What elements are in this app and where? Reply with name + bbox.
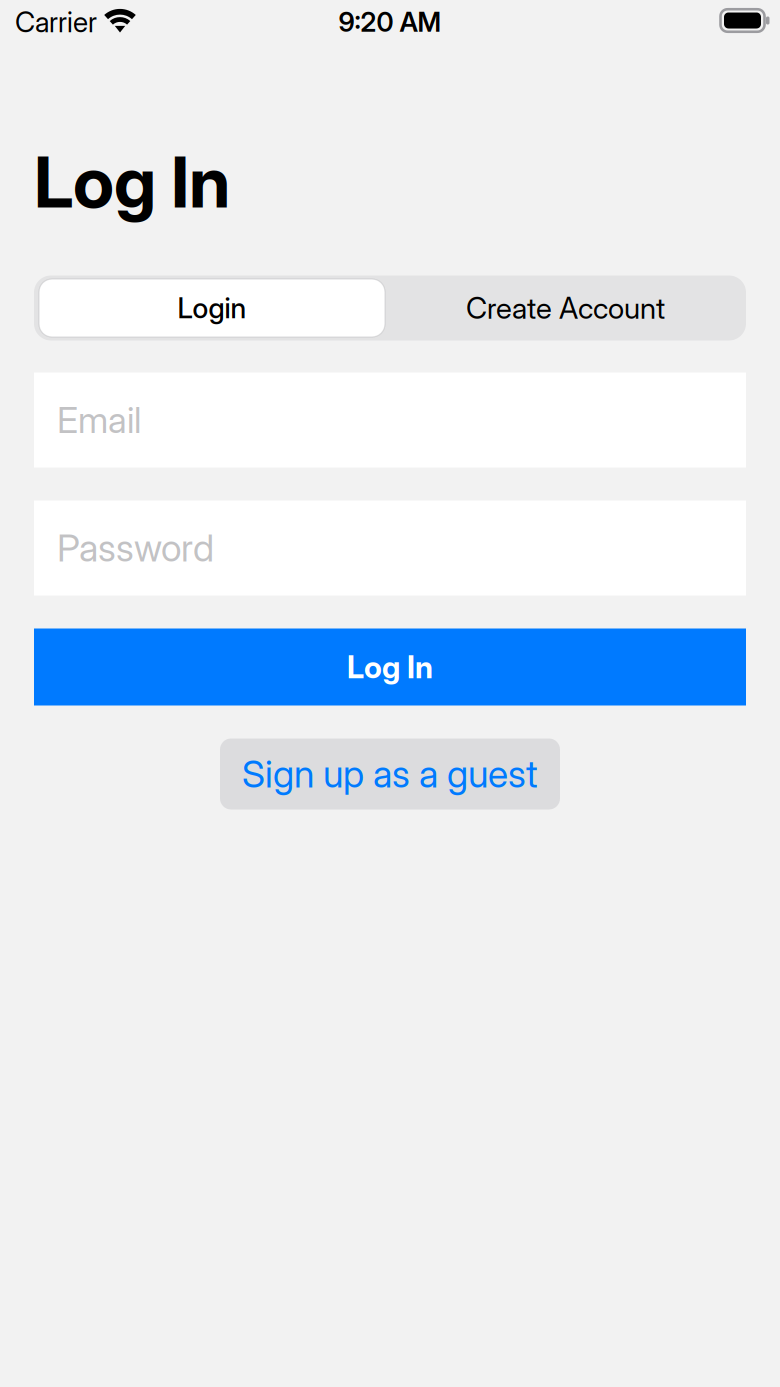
button[interactable]: Password xyxy=(34,500,746,595)
button[interactable]: Sign up as a guest xyxy=(220,738,560,809)
button[interactable]: Email xyxy=(34,372,746,467)
button[interactable]: Login xyxy=(34,279,385,337)
staticText: Carrier xyxy=(15,5,97,39)
staticText: Log In xyxy=(34,139,230,224)
button[interactable]: Log In xyxy=(34,628,746,705)
staticText: Email xyxy=(57,398,141,442)
staticText: Login xyxy=(177,291,246,325)
staticText: Log In xyxy=(347,648,433,686)
button[interactable]: Create Account xyxy=(385,279,746,337)
staticText: Sign up as a guest xyxy=(242,751,538,797)
staticText: 9:20 AM xyxy=(338,6,441,38)
staticText: Password xyxy=(57,525,214,571)
staticText: Create Account xyxy=(466,290,665,326)
